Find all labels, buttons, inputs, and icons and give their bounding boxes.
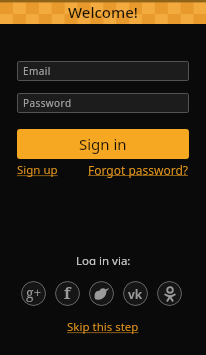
staticText: Skip this step xyxy=(67,319,139,335)
button[interactable]: Skip this step xyxy=(67,319,139,335)
staticText: Forgot password? xyxy=(88,162,189,178)
button[interactable] xyxy=(157,281,182,306)
button[interactable]: Sign up xyxy=(17,162,58,178)
staticText: Email xyxy=(23,64,51,78)
button[interactable]: vk xyxy=(123,281,148,306)
staticText: Sign in xyxy=(79,134,127,154)
button[interactable]: f xyxy=(55,281,80,306)
staticText: Password xyxy=(23,96,72,110)
staticText: vk xyxy=(128,286,143,302)
staticText: Welcome! xyxy=(68,2,138,22)
staticText: Log in via: xyxy=(76,253,131,265)
button[interactable]: Forgot password? xyxy=(88,162,189,178)
button[interactable]: Email xyxy=(17,61,189,81)
button[interactable]: g+ xyxy=(21,281,46,306)
staticText: Sign up xyxy=(17,162,58,178)
button[interactable]: Password xyxy=(17,93,189,113)
staticText: f xyxy=(64,282,71,304)
staticText: g+ xyxy=(26,283,42,302)
button[interactable] xyxy=(89,281,114,306)
button[interactable]: Sign in xyxy=(17,129,189,159)
